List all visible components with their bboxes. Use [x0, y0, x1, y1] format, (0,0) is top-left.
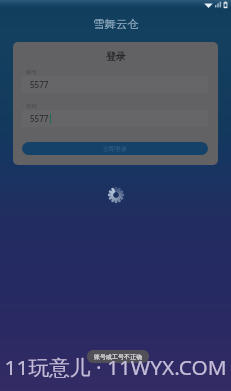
other: Loading [108, 187, 124, 203]
button[interactable]: 5577 [22, 110, 208, 127]
staticText: 5577 [30, 79, 49, 90]
staticText: 5577 [30, 113, 49, 124]
staticText: 雪舞云仓 [93, 17, 139, 29]
staticText: 11玩意儿 · 11WYX.COM [4, 353, 227, 381]
staticText: 账号或工号不正确 [94, 353, 142, 361]
button[interactable]: 5577 [22, 76, 208, 93]
staticText: 立即登录 [103, 145, 127, 153]
staticText: 密码 [26, 103, 37, 110]
staticText: 账号 [26, 69, 37, 76]
button[interactable]: 立即登录 [22, 142, 208, 155]
staticText: 登录 [106, 50, 126, 61]
